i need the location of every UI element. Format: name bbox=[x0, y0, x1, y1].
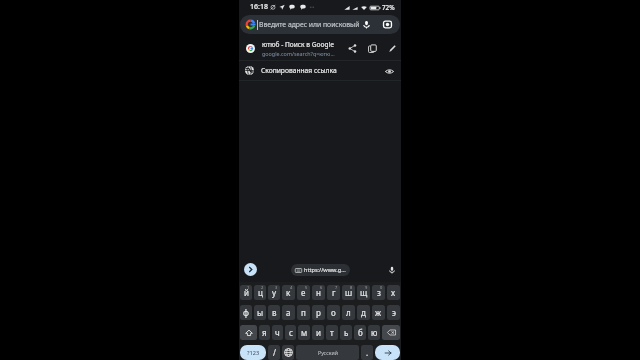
button[interactable]: Preview bbox=[383, 65, 395, 77]
button[interactable]: ?123 bbox=[240, 345, 266, 360]
staticText: ф bbox=[243, 307, 249, 318]
staticText: е bbox=[301, 287, 306, 298]
button[interactable]: Backspace bbox=[382, 325, 400, 340]
staticText: 2 bbox=[261, 285, 264, 290]
button[interactable]: Go bbox=[244, 263, 257, 276]
staticText: Введите адрес или поисковый bbox=[259, 20, 360, 29]
button[interactable]: Copy bbox=[365, 41, 379, 55]
button[interactable]: е bbox=[297, 285, 310, 300]
staticText: Русский bbox=[318, 349, 338, 356]
staticText: м bbox=[301, 327, 308, 338]
staticText: л bbox=[346, 307, 351, 318]
button[interactable]: у bbox=[268, 285, 280, 300]
button[interactable]: м bbox=[298, 325, 310, 340]
staticText: . bbox=[366, 347, 369, 358]
button[interactable]: . bbox=[361, 345, 373, 360]
button[interactable]: Enter bbox=[375, 345, 400, 360]
button[interactable]: о bbox=[327, 305, 340, 320]
staticText: 1 bbox=[247, 285, 250, 290]
button[interactable]: https://www.g... bbox=[291, 264, 350, 276]
button[interactable]: б bbox=[354, 325, 366, 340]
button[interactable]: и bbox=[312, 325, 324, 340]
staticText: 0 bbox=[380, 285, 383, 290]
button[interactable]: ч bbox=[272, 325, 283, 340]
staticText: й bbox=[244, 287, 249, 298]
staticText: р bbox=[316, 307, 321, 318]
button[interactable]: й bbox=[240, 285, 252, 300]
button[interactable]: Voice input bbox=[385, 263, 398, 276]
staticText: г bbox=[332, 287, 336, 298]
button[interactable]: Скопированная ссылка bbox=[239, 61, 401, 80]
staticText: а bbox=[286, 307, 291, 318]
staticText: ш bbox=[345, 287, 353, 298]
button[interactable]: Русский bbox=[296, 345, 359, 360]
button[interactable]: к bbox=[282, 285, 295, 300]
staticText: Скопированная ссылка bbox=[261, 66, 383, 75]
staticText: с bbox=[289, 327, 293, 338]
button[interactable]: / bbox=[268, 345, 280, 360]
staticText: 6 bbox=[320, 285, 323, 290]
button[interactable]: Change language bbox=[282, 345, 294, 360]
staticText: я bbox=[262, 327, 267, 338]
staticText: д bbox=[361, 307, 366, 318]
staticText: 16:18 bbox=[250, 2, 268, 12]
button[interactable]: Введите адрес или поисковый bbox=[240, 15, 400, 34]
button[interactable]: Edit query bbox=[385, 41, 399, 55]
staticText: 8 bbox=[350, 285, 353, 290]
staticText: т bbox=[330, 327, 334, 338]
staticText: э bbox=[392, 307, 396, 318]
button[interactable]: ф bbox=[240, 305, 252, 320]
staticText: 4 bbox=[290, 285, 293, 290]
button[interactable]: г bbox=[327, 285, 340, 300]
staticText: щ bbox=[360, 287, 368, 298]
staticText: н bbox=[316, 287, 321, 298]
button[interactable]: ш bbox=[342, 285, 355, 300]
button[interactable]: ы bbox=[254, 305, 266, 320]
staticText: ютюб - Поиск в Google bbox=[262, 40, 335, 49]
staticText: з bbox=[377, 287, 381, 298]
staticText: ж bbox=[375, 307, 382, 318]
staticText: б bbox=[358, 327, 363, 338]
staticText: https://www.g... bbox=[304, 266, 346, 274]
button[interactable]: а bbox=[282, 305, 295, 320]
button[interactable]: п bbox=[297, 305, 310, 320]
button[interactable]: н bbox=[312, 285, 325, 300]
button[interactable]: т bbox=[326, 325, 338, 340]
staticText: 5 bbox=[305, 285, 308, 290]
staticText: ч bbox=[275, 327, 280, 338]
button[interactable]: щ bbox=[357, 285, 370, 300]
staticText: ц bbox=[258, 287, 263, 298]
staticText: ы bbox=[257, 307, 264, 318]
button[interactable]: х bbox=[387, 285, 400, 300]
staticText: х bbox=[391, 287, 396, 298]
staticText: 3 bbox=[275, 285, 278, 290]
button[interactable]: с bbox=[285, 325, 296, 340]
button[interactable]: я bbox=[259, 325, 270, 340]
staticText: и bbox=[316, 327, 321, 338]
staticText: к bbox=[286, 287, 291, 298]
button[interactable]: Google Lens bbox=[381, 18, 394, 31]
staticText: ь bbox=[344, 327, 349, 338]
staticText: о bbox=[331, 307, 336, 318]
staticText: / bbox=[273, 347, 276, 358]
button[interactable]: э bbox=[387, 305, 400, 320]
button[interactable]: д bbox=[357, 305, 370, 320]
staticText: в bbox=[272, 307, 277, 318]
staticText: google.com/search?q=ютю... bbox=[262, 50, 335, 57]
staticText: ю bbox=[371, 327, 378, 338]
staticText: 72% bbox=[382, 3, 395, 12]
button[interactable]: ь bbox=[340, 325, 352, 340]
button[interactable]: з bbox=[372, 285, 385, 300]
button[interactable]: в bbox=[268, 305, 280, 320]
button[interactable]: р bbox=[312, 305, 325, 320]
button[interactable]: ютюб - Поиск в Google bbox=[239, 36, 401, 60]
button[interactable]: Share bbox=[345, 41, 359, 55]
button[interactable]: Shift bbox=[240, 325, 257, 340]
staticText: у bbox=[272, 287, 277, 298]
button[interactable]: л bbox=[342, 305, 355, 320]
staticText: п bbox=[301, 307, 306, 318]
button[interactable]: ю bbox=[368, 325, 380, 340]
button[interactable]: Voice search bbox=[360, 18, 373, 31]
button[interactable]: ц bbox=[254, 285, 266, 300]
button[interactable]: ж bbox=[372, 305, 385, 320]
